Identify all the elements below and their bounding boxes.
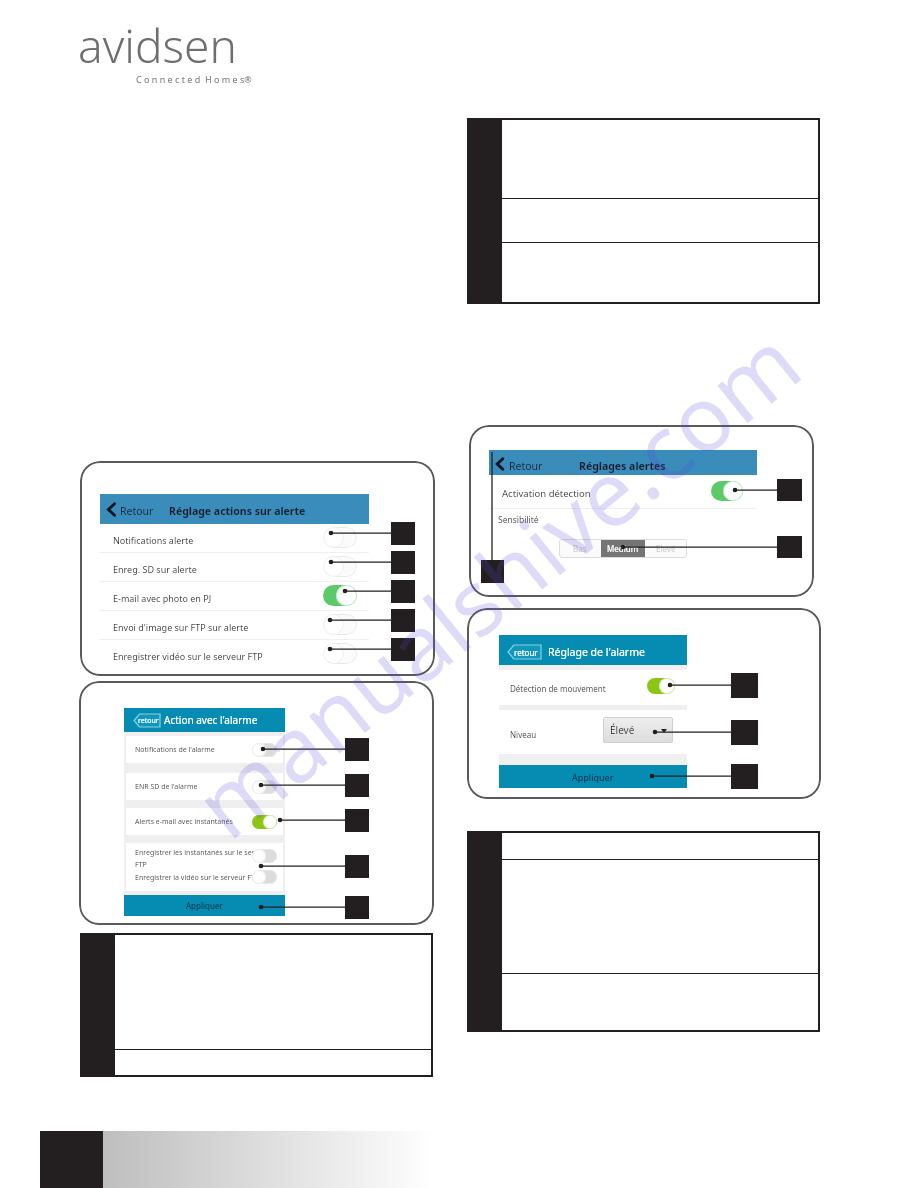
button[interactable]: Désactivé xyxy=(252,849,277,863)
button[interactable]: E-mail avec photo en PJ xyxy=(100,582,369,611)
button[interactable]: Appliquer xyxy=(124,895,285,916)
button[interactable]: retour xyxy=(508,645,543,659)
button[interactable]: Alerts e-mail avec instantanés xyxy=(126,808,283,835)
staticText: Réglage actions sur alerte xyxy=(169,504,306,518)
staticText: C o n n e c t e d H o m e s® xyxy=(136,73,252,85)
staticText: E-mail avec photo en PJ xyxy=(113,592,212,604)
staticText: retour xyxy=(138,716,159,726)
staticText: Bas xyxy=(573,543,587,554)
button[interactable]: Retour xyxy=(106,503,117,516)
staticText: Sensibilité xyxy=(498,514,539,526)
staticText: Notifications de l'alarme xyxy=(135,745,215,755)
button[interactable]: Enreg. SD sur alerte xyxy=(100,553,369,582)
button[interactable]: Désactivé xyxy=(323,556,357,577)
button[interactable]: Activé xyxy=(647,678,675,694)
button[interactable]: Bas xyxy=(559,539,601,558)
button[interactable] xyxy=(489,450,757,475)
button[interactable]: Notifications de l'alarme xyxy=(126,736,283,763)
button[interactable]: Désactivé xyxy=(323,643,357,664)
button[interactable]: Activé xyxy=(323,585,357,606)
button[interactable] xyxy=(100,494,369,524)
button[interactable]: Désactivé xyxy=(252,780,277,794)
button[interactable]: Niveau xyxy=(499,710,687,754)
button[interactable]: Désactivé xyxy=(252,870,277,884)
staticText: Enregistrer vidéo sur le serveur FTP xyxy=(113,650,263,662)
staticText: retour xyxy=(514,647,538,658)
staticText: ENR SD de l'alarme xyxy=(135,782,198,792)
button[interactable]: Appliquer xyxy=(499,765,687,788)
staticText: Appliquer xyxy=(572,771,614,783)
button[interactable]: Activé xyxy=(252,815,277,829)
button[interactable] xyxy=(124,708,285,732)
staticText: Activation détection xyxy=(502,487,591,500)
staticText: Retour xyxy=(120,504,154,518)
button[interactable]: Elevé xyxy=(645,539,687,558)
staticText: manualshive.com xyxy=(168,300,824,864)
staticText: Niveau xyxy=(510,729,537,740)
staticText: Envoi d'image sur FTP sur alerte xyxy=(113,621,249,633)
button[interactable]: Désactivé xyxy=(323,527,357,548)
staticText: Action avec l'alarme xyxy=(164,713,258,727)
button[interactable] xyxy=(499,635,687,665)
staticText: Détection de mouvement xyxy=(510,683,606,694)
button[interactable]: Medium xyxy=(601,539,645,558)
staticText: Enregistrer la vidéo sur le serveur FTP xyxy=(135,873,259,883)
button[interactable]: ENR SD de l'alarme xyxy=(126,773,283,800)
button[interactable]: Détection de mouvement xyxy=(499,670,687,705)
staticText: Medium xyxy=(607,543,639,554)
staticText: Alerts e-mail avec instantanés xyxy=(135,817,233,827)
button[interactable]: Élevé xyxy=(603,717,673,743)
button[interactable]: Enregistrer les instantanés sur le serve… xyxy=(126,843,283,891)
button[interactable]: Notifications alerte xyxy=(100,524,369,553)
staticText: Enreg. SD sur alerte xyxy=(113,563,197,575)
staticText: Notifications alerte xyxy=(113,534,194,546)
button[interactable]: retour xyxy=(134,714,162,727)
button[interactable]: Désactivé xyxy=(252,743,277,757)
staticText: avidsen xyxy=(78,14,237,77)
staticText: Réglages alertes xyxy=(579,459,666,473)
button[interactable]: Désactivé xyxy=(323,614,357,635)
button[interactable]: Enregistrer vidéo sur le serveur FTP xyxy=(100,640,369,669)
staticText: Elevé xyxy=(656,543,676,554)
button[interactable]: Retour xyxy=(495,458,505,470)
staticText: Enregistrer les instantanés sur le serve… xyxy=(135,848,270,869)
staticText: Élevé xyxy=(610,723,635,737)
button[interactable]: Activé xyxy=(711,481,743,501)
button[interactable]: Activation détection xyxy=(489,475,757,508)
button[interactable]: Envoi d'image sur FTP sur alerte xyxy=(100,611,369,640)
staticText: Réglage de l'alarme xyxy=(548,645,645,659)
staticText: Retour xyxy=(509,459,543,473)
staticText: Appliquer xyxy=(186,900,223,911)
